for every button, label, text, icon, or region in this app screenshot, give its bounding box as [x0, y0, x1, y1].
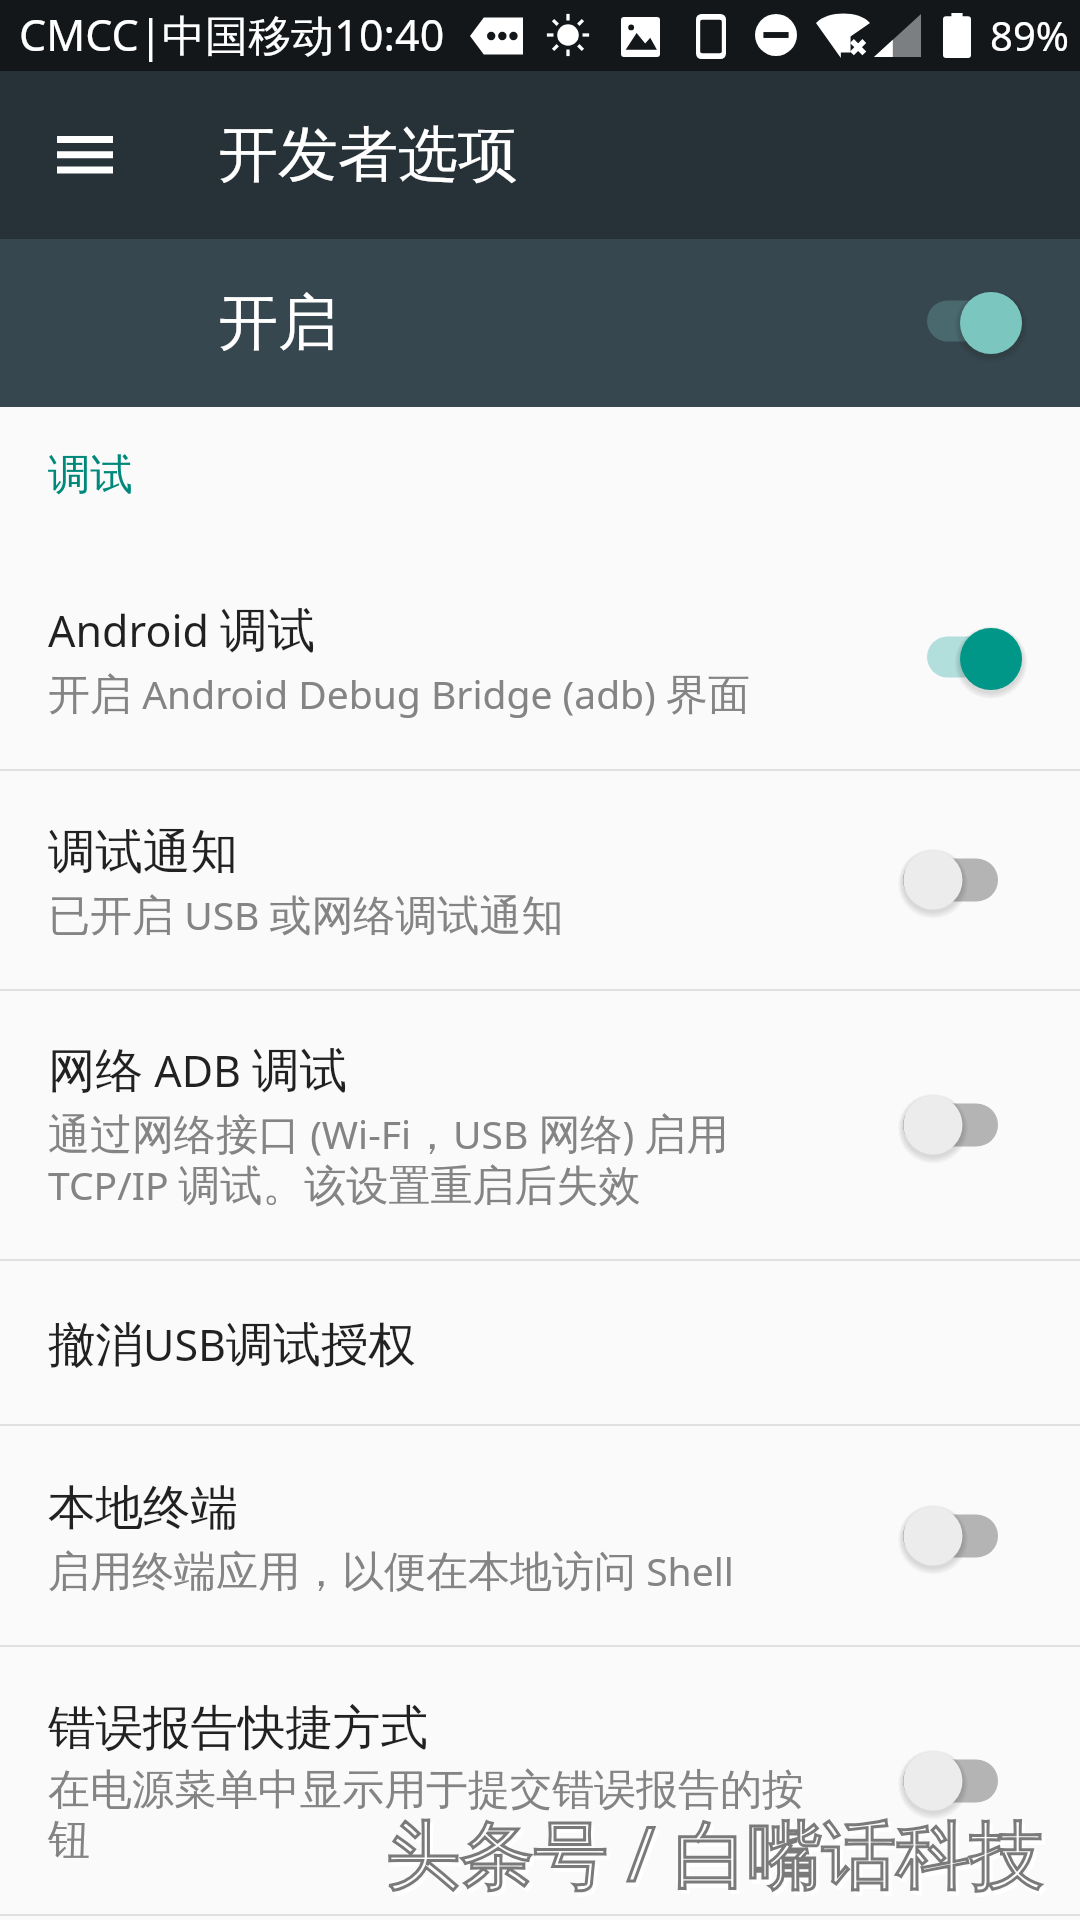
button[interactable]: 网络 ADB 调试 [0, 991, 1080, 1259]
staticText: 开启 [218, 285, 338, 361]
staticText: 错误报告快捷方式 [48, 1698, 428, 1758]
staticText: 在电源菜单中显示用于提交错误报告的按 钮 [48, 1764, 804, 1867]
staticText: 开启 Android Debug Bridge (adb) 界面 [48, 667, 750, 721]
staticText: 调试 [48, 448, 133, 502]
staticText: 撤消USB调试授权 [48, 1315, 416, 1375]
button[interactable]: Toggle on [926, 627, 1022, 691]
staticText: 通过网络接口 (Wi-Fi，USB 网络) 启用 TCP/IP 调试。该设置重启… [48, 1107, 729, 1213]
button[interactable]: Android 调试 [0, 549, 1080, 769]
button[interactable]: 调试通知 [0, 771, 1080, 989]
staticText: 89% [990, 8, 1069, 62]
staticText: 头条号 / 白嘴话科技 [389, 1806, 1048, 1907]
staticText: 头条号 / 白嘴话科技 [386, 1802, 1045, 1903]
staticText: CMCC|中国移动10:40 [19, 5, 445, 64]
button[interactable]: 本地终端 [0, 1426, 1080, 1645]
button[interactable]: 开启 [0, 239, 1080, 407]
button[interactable]: Toggle on [926, 291, 1022, 355]
staticText: 开发者选项 [218, 117, 518, 193]
button[interactable]: 错误报告快捷方式 [0, 1647, 1080, 1914]
staticText: Android 调试 [48, 601, 316, 661]
button[interactable]: Toggle off [903, 1749, 999, 1813]
button[interactable]: Toggle off [903, 1504, 999, 1568]
staticText: 已开启 USB 或网络调试通知 [48, 888, 564, 942]
staticText: 本地终端 [48, 1478, 238, 1538]
staticText: 启用终端应用，以便在本地访问 Shell [48, 1544, 734, 1598]
staticText: 网络 ADB 调试 [48, 1041, 348, 1101]
button[interactable]: Toggle off [903, 848, 999, 912]
button[interactable]: Menu [33, 103, 137, 207]
staticText: 调试通知 [48, 822, 238, 882]
button[interactable]: 撤消USB调试授权 [0, 1261, 1080, 1424]
button[interactable]: Toggle off [903, 1093, 999, 1157]
